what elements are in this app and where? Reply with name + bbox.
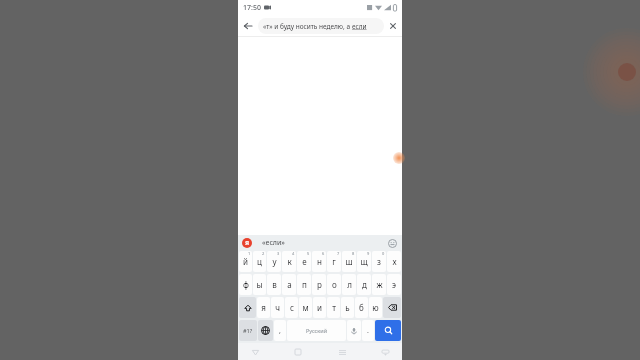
button[interactable]: ю [369, 297, 382, 318]
button[interactable]: д [357, 274, 371, 295]
staticText: 6 [322, 251, 325, 256]
button[interactable]: э [387, 274, 401, 295]
staticText: 3 [277, 251, 280, 256]
button[interactable]: т [327, 297, 340, 318]
button[interactable]: Clear [384, 17, 402, 35]
button[interactable]: я [257, 297, 270, 318]
button[interactable]: 2 [253, 251, 266, 272]
button[interactable]: л [342, 274, 356, 295]
staticText: р [317, 279, 322, 290]
button[interactable]: Home [291, 345, 305, 359]
staticText: , [279, 326, 281, 336]
button[interactable]: х [387, 251, 401, 272]
staticText: «т» и буду носить неделю, а [263, 22, 352, 31]
staticText: а [287, 279, 292, 290]
button[interactable]: Back [238, 16, 258, 36]
staticText: 2 [262, 251, 265, 256]
button[interactable]: Back [248, 345, 262, 359]
staticText: ц [257, 256, 262, 267]
staticText: ы [256, 279, 263, 290]
button[interactable]: . [362, 320, 374, 341]
staticText: о [332, 279, 337, 290]
button[interactable]: 3 [267, 251, 281, 272]
button[interactable]: 6 [312, 251, 326, 272]
staticText: 5 [307, 251, 310, 256]
staticText: г [332, 256, 336, 267]
staticText: ю [372, 302, 379, 313]
button[interactable]: #1? [239, 320, 257, 341]
staticText: 9 [367, 251, 370, 256]
staticText: ч [275, 302, 280, 313]
button[interactable]: 0 [372, 251, 386, 272]
button[interactable]: р [312, 274, 326, 295]
staticText: ж [376, 279, 383, 290]
button[interactable]: Hide keyboard [378, 345, 392, 359]
staticText: п [302, 279, 307, 290]
staticText: ь [345, 302, 350, 313]
button[interactable]: Recents [335, 345, 349, 359]
button[interactable]: ч [271, 297, 284, 318]
staticText: 8 [352, 251, 355, 256]
button[interactable]: Search [375, 320, 401, 341]
staticText: н [317, 256, 322, 267]
button[interactable]: 9 [357, 251, 371, 272]
staticText: х [392, 256, 397, 267]
button[interactable]: Shift [239, 297, 256, 318]
staticText: у [272, 256, 277, 267]
staticText: и [317, 302, 322, 313]
button[interactable]: Emoji [386, 237, 398, 249]
button[interactable]: Русский [287, 320, 346, 341]
staticText: м [302, 302, 309, 313]
staticText: й [243, 256, 248, 267]
staticText: я [261, 302, 266, 313]
button[interactable]: и [313, 297, 326, 318]
staticText: с [290, 302, 294, 313]
staticText: е [302, 256, 307, 267]
button[interactable]: м [299, 297, 312, 318]
button[interactable]: ь [341, 297, 354, 318]
button[interactable]: Voice input [347, 320, 361, 341]
button[interactable]: 1 [239, 251, 252, 272]
staticText: к [287, 256, 292, 267]
button[interactable]: 5 [297, 251, 311, 272]
button[interactable]: с [285, 297, 298, 318]
button[interactable]: 7 [327, 251, 341, 272]
staticText: в [272, 279, 277, 290]
staticText: 7 [337, 251, 340, 256]
staticText: щ [360, 256, 368, 267]
button[interactable]: 8 [342, 251, 356, 272]
button[interactable]: ж [372, 274, 386, 295]
button[interactable]: ы [253, 274, 266, 295]
button[interactable]: «если» [260, 238, 287, 248]
button[interactable]: «т» и буду носить неделю, а [258, 18, 384, 34]
staticText: л [347, 279, 352, 290]
staticText: . [367, 326, 369, 336]
button[interactable]: Change language [258, 320, 273, 341]
staticText: #1? [243, 327, 253, 334]
button[interactable]: о [327, 274, 341, 295]
staticText: д [362, 279, 367, 290]
staticText: 1 [248, 251, 251, 256]
staticText: ш [345, 256, 353, 267]
staticText: если [352, 22, 367, 31]
button[interactable]: Backspace [383, 297, 401, 318]
button[interactable]: , [274, 320, 286, 341]
staticText: э [392, 279, 396, 290]
button[interactable]: п [297, 274, 311, 295]
staticText: т [332, 302, 336, 313]
staticText: Русский [306, 327, 328, 334]
button[interactable]: Yandex [242, 238, 252, 248]
staticText: «если» [262, 238, 285, 248]
button[interactable]: а [282, 274, 296, 295]
staticText: 17:50 [243, 3, 261, 13]
button[interactable]: в [267, 274, 281, 295]
staticText: б [359, 302, 364, 313]
button[interactable]: 4 [282, 251, 296, 272]
staticText: Я [245, 239, 250, 247]
staticText: 4 [292, 251, 295, 256]
staticText: ф [243, 279, 249, 290]
staticText: з [377, 256, 381, 267]
button[interactable]: б [355, 297, 368, 318]
staticText: 0 [382, 251, 385, 256]
button[interactable]: ф [239, 274, 252, 295]
